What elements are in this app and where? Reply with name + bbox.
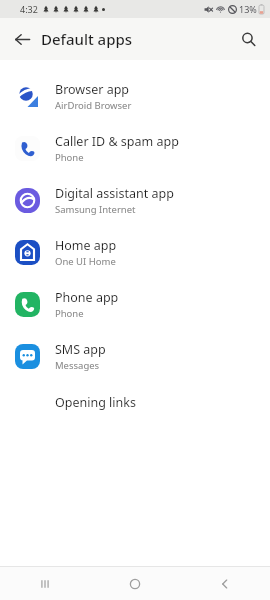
button[interactable]: Digital assistant app [0,174,270,226]
staticText: Samsung Internet [55,203,136,216]
staticText: Caller ID & spam app [55,133,179,150]
button[interactable]: Back [180,567,270,600]
staticText: 4:32 [20,3,38,15]
button[interactable]: SMS app [0,330,270,382]
staticText: Browser app [55,81,130,98]
staticText: Phone [55,307,84,320]
staticText: Opening links [55,394,136,411]
button[interactable]: Home app [0,226,270,278]
button[interactable]: Caller ID & spam app [0,122,270,174]
button[interactable]: Back [8,25,36,53]
button[interactable]: Search [234,25,262,53]
staticText: Phone app [55,289,119,306]
button[interactable]: Recents [0,567,90,600]
staticText: SMS app [55,341,106,358]
staticText: One UI Home [55,255,116,268]
staticText: Phone [55,151,84,164]
button[interactable]: Phone app [0,278,270,330]
staticText: Messages [55,359,100,372]
staticText: Home app [55,237,117,254]
staticText: 13% [239,3,257,15]
button[interactable]: Home [90,567,180,600]
staticText: Digital assistant app [55,185,174,202]
staticText: AirDroid Browser [55,99,132,112]
button[interactable]: Opening links [0,382,270,422]
button[interactable]: Browser app [0,70,270,122]
staticText: Default apps [41,29,133,49]
